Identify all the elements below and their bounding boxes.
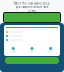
button[interactable] <box>5 57 59 64</box>
staticText: Meet the new way to keep <box>14 2 50 5</box>
staticText: private <box>27 9 36 12</box>
staticText: your account secure and <box>15 5 48 9</box>
